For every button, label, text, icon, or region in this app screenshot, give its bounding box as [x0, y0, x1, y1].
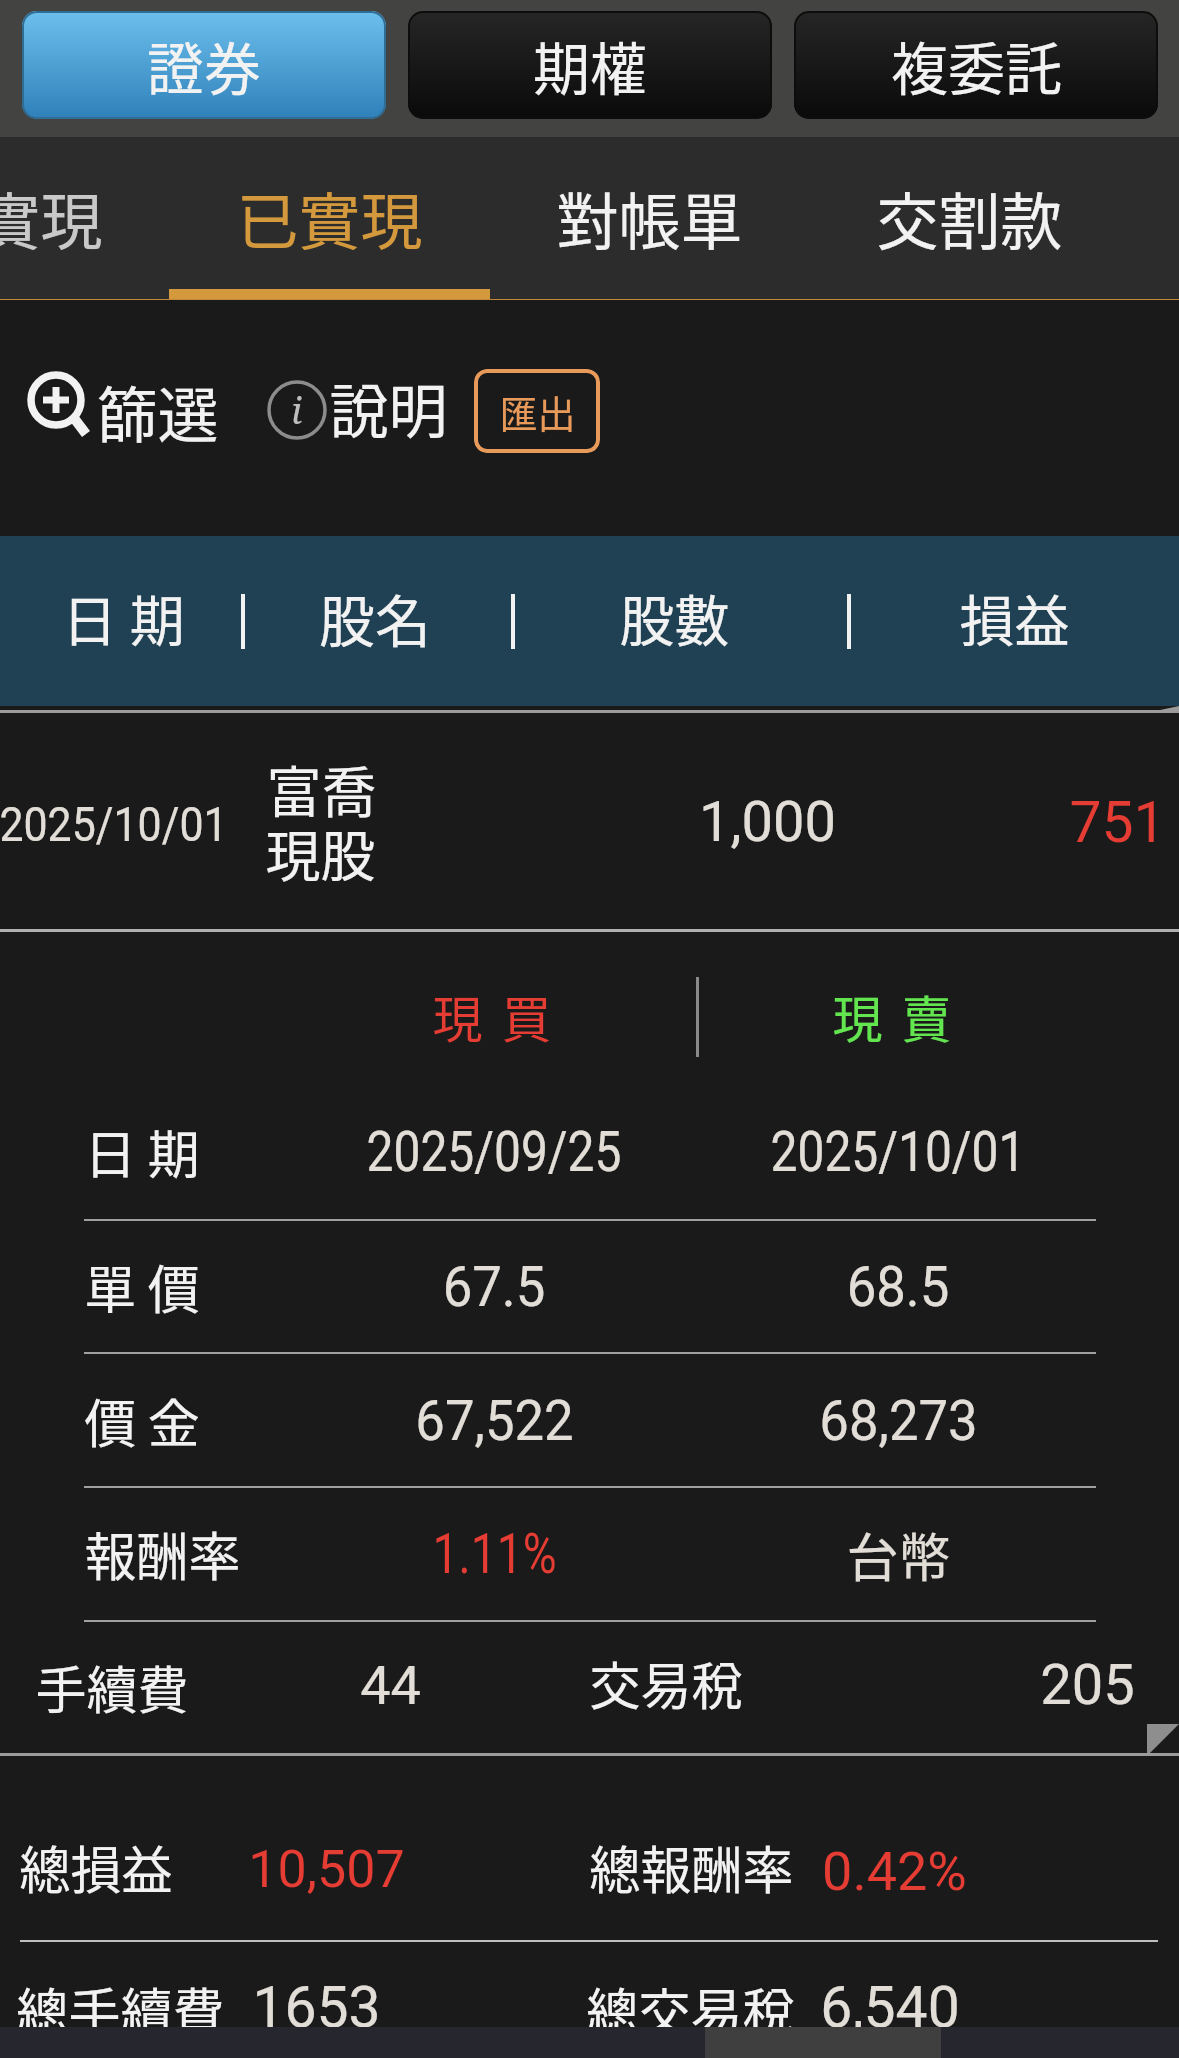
staticText: 總手續費: [16, 1972, 225, 2047]
staticText: i: [291, 384, 303, 434]
staticText: 已實現: [236, 173, 423, 263]
staticText: 期權: [533, 24, 647, 107]
staticText: 現股: [265, 812, 376, 892]
staticText: 價 金: [84, 1383, 200, 1458]
staticText: 篩選: [96, 367, 219, 455]
button[interactable]: 已實現: [169, 137, 489, 300]
staticText: 現 買: [432, 980, 556, 1052]
staticText: 2025/10/01: [770, 1119, 1025, 1185]
staticText: 總報酬率: [589, 1830, 794, 1904]
staticText: 損益: [959, 577, 1070, 657]
button[interactable]: 對帳單: [489, 137, 809, 300]
staticText: 對帳單: [556, 173, 743, 263]
staticText: 富喬: [266, 748, 377, 828]
staticText: 1,000: [699, 789, 836, 855]
button[interactable]: 匯出: [474, 369, 600, 453]
button[interactable]: 篩選: [16, 360, 228, 460]
staticText: 10,507: [248, 1839, 405, 1900]
staticText: 總交易稅: [586, 1972, 795, 2047]
staticText: 6,540: [820, 1974, 960, 2041]
staticText: 總損益: [19, 1830, 173, 1904]
staticText: 日 期: [62, 577, 185, 657]
staticText: 單 價: [84, 1249, 200, 1324]
staticText: 日 期: [84, 1114, 200, 1189]
button[interactable]: 證券: [22, 11, 386, 119]
staticText: 說明: [329, 365, 448, 450]
staticText: 交割款: [876, 173, 1063, 263]
staticText: 1.11%: [432, 1521, 557, 1587]
staticText: 手續費: [35, 1650, 189, 1724]
staticText: 證券: [147, 24, 261, 107]
staticText: 複委託: [891, 24, 1062, 107]
staticText: 67.5: [442, 1254, 546, 1320]
staticText: 台幣: [846, 1517, 951, 1592]
staticText: 205: [1040, 1652, 1135, 1718]
staticText: 67,522: [415, 1388, 574, 1454]
button[interactable]: 說明: [262, 360, 452, 460]
staticText: 現 賣: [832, 980, 956, 1052]
staticText: 1653: [252, 1974, 381, 2041]
staticText: 2025/09/25: [366, 1119, 621, 1185]
staticText: 2025/10/01: [0, 796, 228, 853]
button[interactable]: 期權: [408, 11, 772, 119]
staticText: 751: [1069, 789, 1166, 856]
staticText: 未實現: [0, 173, 103, 263]
staticText: 0.42%: [822, 1840, 967, 1903]
staticText: 68,273: [819, 1388, 978, 1454]
button[interactable]: 交割款: [809, 137, 1129, 300]
staticText: 匯出: [499, 384, 576, 439]
staticText: 股數: [619, 577, 730, 657]
button[interactable]: 未實現: [0, 137, 169, 300]
button[interactable]: 2025/10/01: [0, 713, 1179, 929]
staticText: 68.5: [846, 1254, 950, 1320]
button[interactable]: 複委託: [794, 11, 1158, 119]
staticText: 報酬率: [84, 1516, 241, 1591]
staticText: 股名: [319, 577, 431, 658]
staticText: 交易稅: [589, 1646, 743, 1720]
staticText: 44: [360, 1654, 421, 1717]
